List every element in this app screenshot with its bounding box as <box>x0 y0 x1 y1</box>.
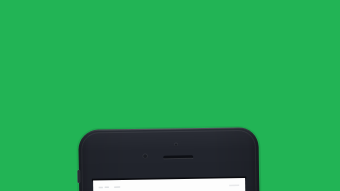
button[interactable]: Phone mockup on green background <box>0 0 340 191</box>
